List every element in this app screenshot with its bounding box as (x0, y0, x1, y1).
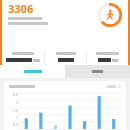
button[interactable] (45, 48, 86, 65)
staticText: 0.5 (13, 122, 18, 127)
button[interactable] (106, 84, 122, 89)
staticText: 2.5 (13, 92, 18, 97)
button[interactable]: Activity progress (98, 3, 122, 27)
button[interactable] (0, 65, 65, 78)
staticText: 1 (15, 115, 18, 120)
staticText: 3306 (8, 1, 34, 16)
staticText: 2 (15, 100, 18, 105)
button[interactable] (87, 48, 128, 65)
button[interactable] (2, 48, 44, 65)
staticText: 1.5 (13, 108, 18, 113)
button[interactable] (65, 65, 130, 78)
